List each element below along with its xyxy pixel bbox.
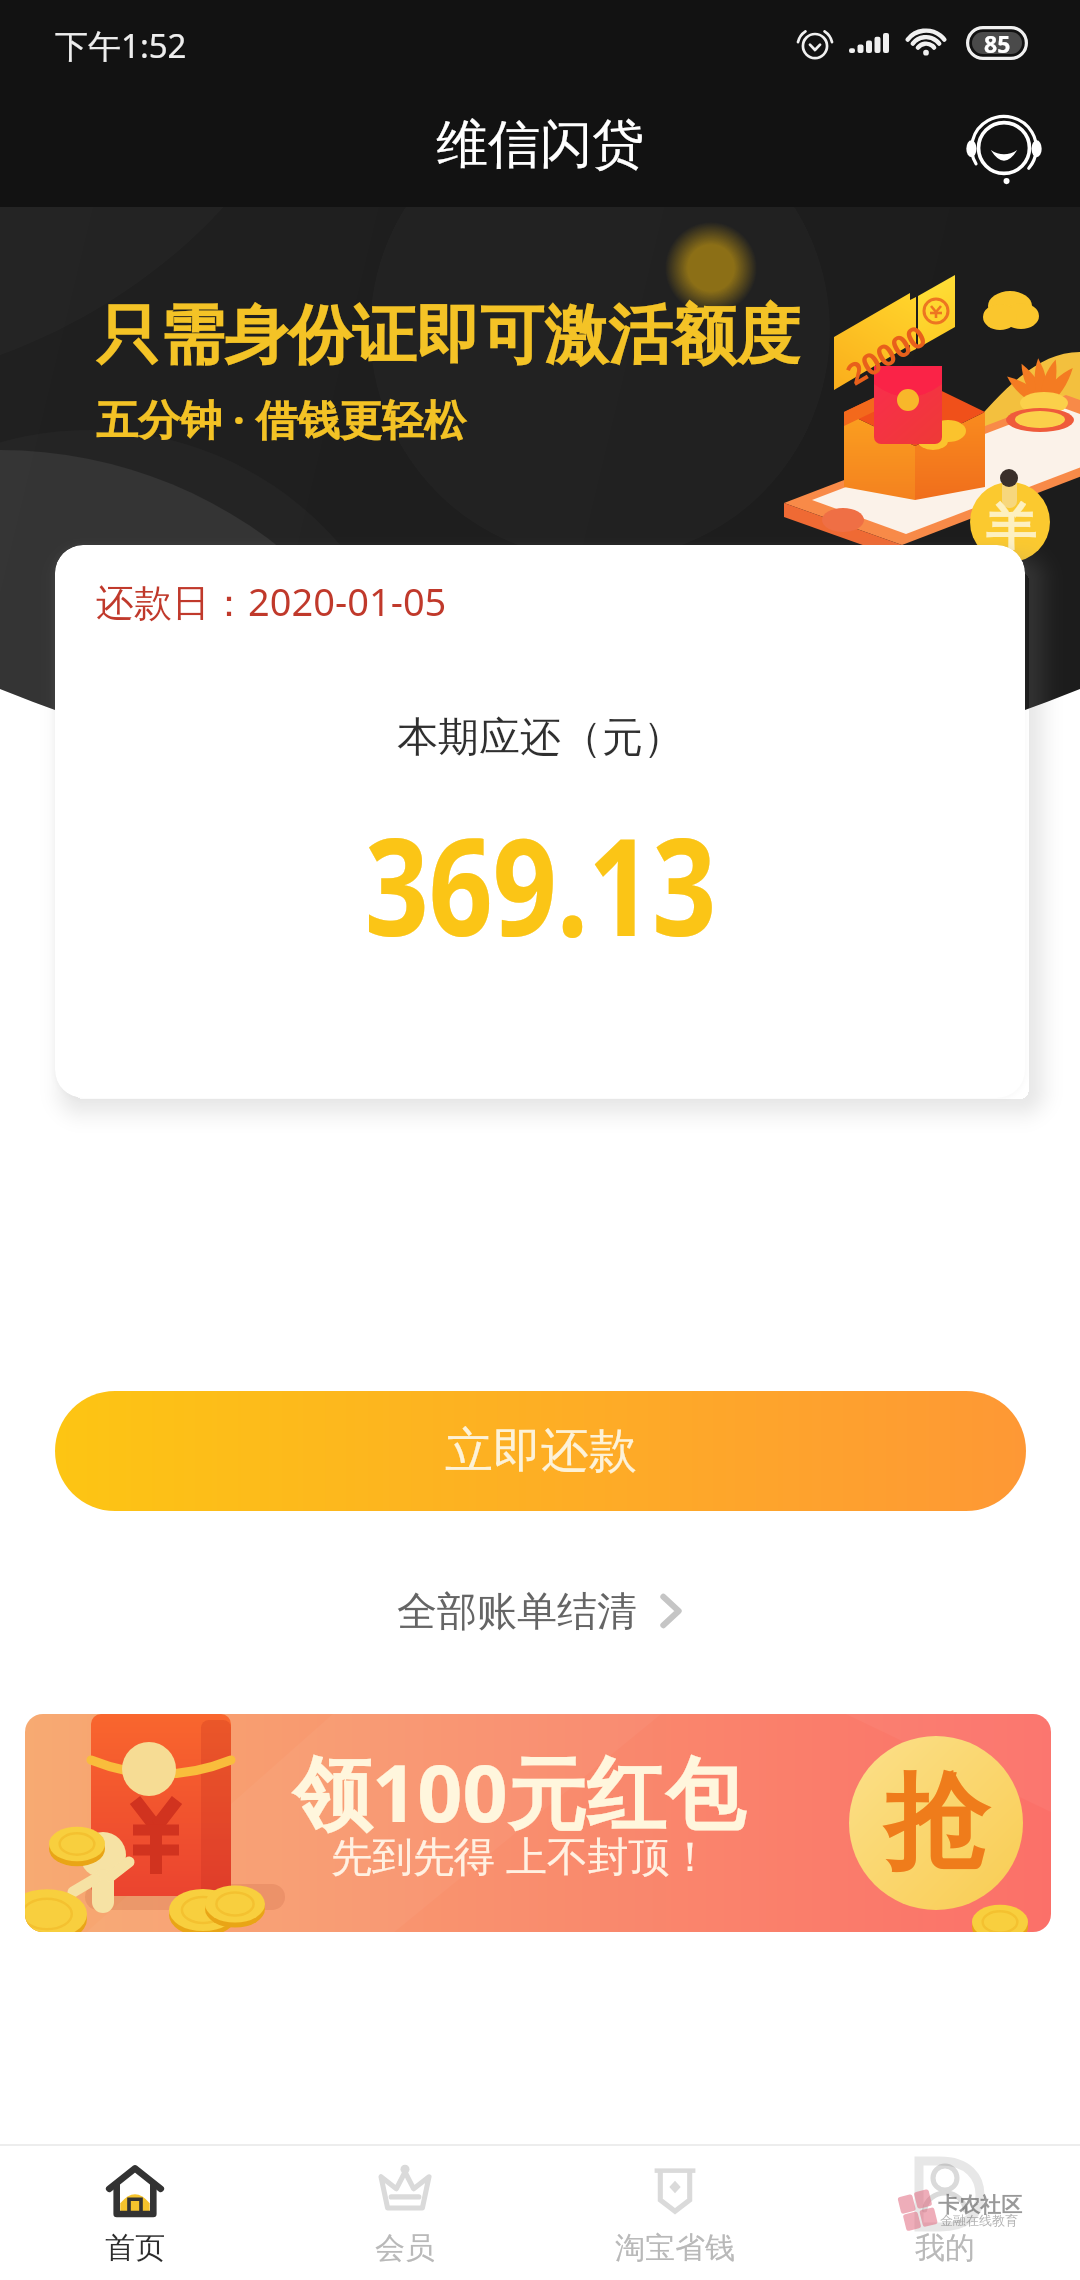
staticText: 立即还款 [445, 1421, 637, 1481]
staticText: 还款日：2020-01-05 [96, 575, 447, 627]
button[interactable]: 在线客服 [952, 96, 1056, 200]
staticText: 全部账单结清 [397, 1586, 637, 1636]
button[interactable]: 会员 [270, 2146, 540, 2280]
staticText: 淘宝省钱 [615, 2229, 735, 2267]
button[interactable]: 我的 [810, 2146, 1080, 2280]
button[interactable]: 淘宝省钱 [540, 2146, 810, 2280]
button[interactable]: 还款日：2020-01-05 [55, 545, 1025, 1098]
staticText: 领100元红包 [293, 1738, 745, 1846]
button[interactable]: 首页 [0, 2146, 270, 2280]
staticText: 首页 [105, 2229, 165, 2267]
staticText: 维信闪贷 [436, 112, 644, 178]
button[interactable]: 全部账单结清 [387, 1578, 693, 1644]
button[interactable]: 领100元红包 [25, 1714, 1051, 1932]
staticText: 抢 [884, 1758, 988, 1889]
staticText: 只需身份证即可激活额度 [96, 295, 800, 376]
staticText: 20000 [838, 315, 933, 394]
staticText: 本期应还（元） [397, 712, 684, 764]
staticText: 369.13 [365, 793, 716, 976]
staticText: 先到先得 上不封顶！ [331, 1827, 711, 1883]
staticText: 我的 [915, 2229, 975, 2267]
staticText: 金融在线教育 [940, 2212, 1018, 2228]
staticText: 五分钟 · 借钱更轻松 [96, 390, 466, 447]
button[interactable]: 立即还款 [55, 1391, 1026, 1511]
staticText: 羊 [986, 496, 1036, 559]
staticText: 下午1:52 [55, 23, 187, 68]
staticText: 卡农社区 [938, 2192, 1022, 2218]
staticText: 85 [984, 28, 1011, 59]
staticText: 会员 [375, 2229, 435, 2267]
